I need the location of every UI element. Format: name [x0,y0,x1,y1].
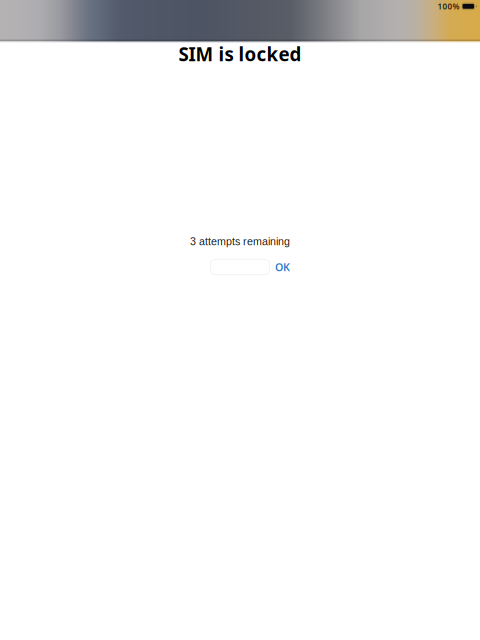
staticText: OK [275,260,290,274]
staticText: SIM is locked [178,41,301,66]
staticText: 3 attempts remaining [190,235,290,247]
button[interactable]: OK [275,260,290,274]
staticText: 100% [438,1,460,12]
button[interactable]: SIM PIN [210,259,269,275]
